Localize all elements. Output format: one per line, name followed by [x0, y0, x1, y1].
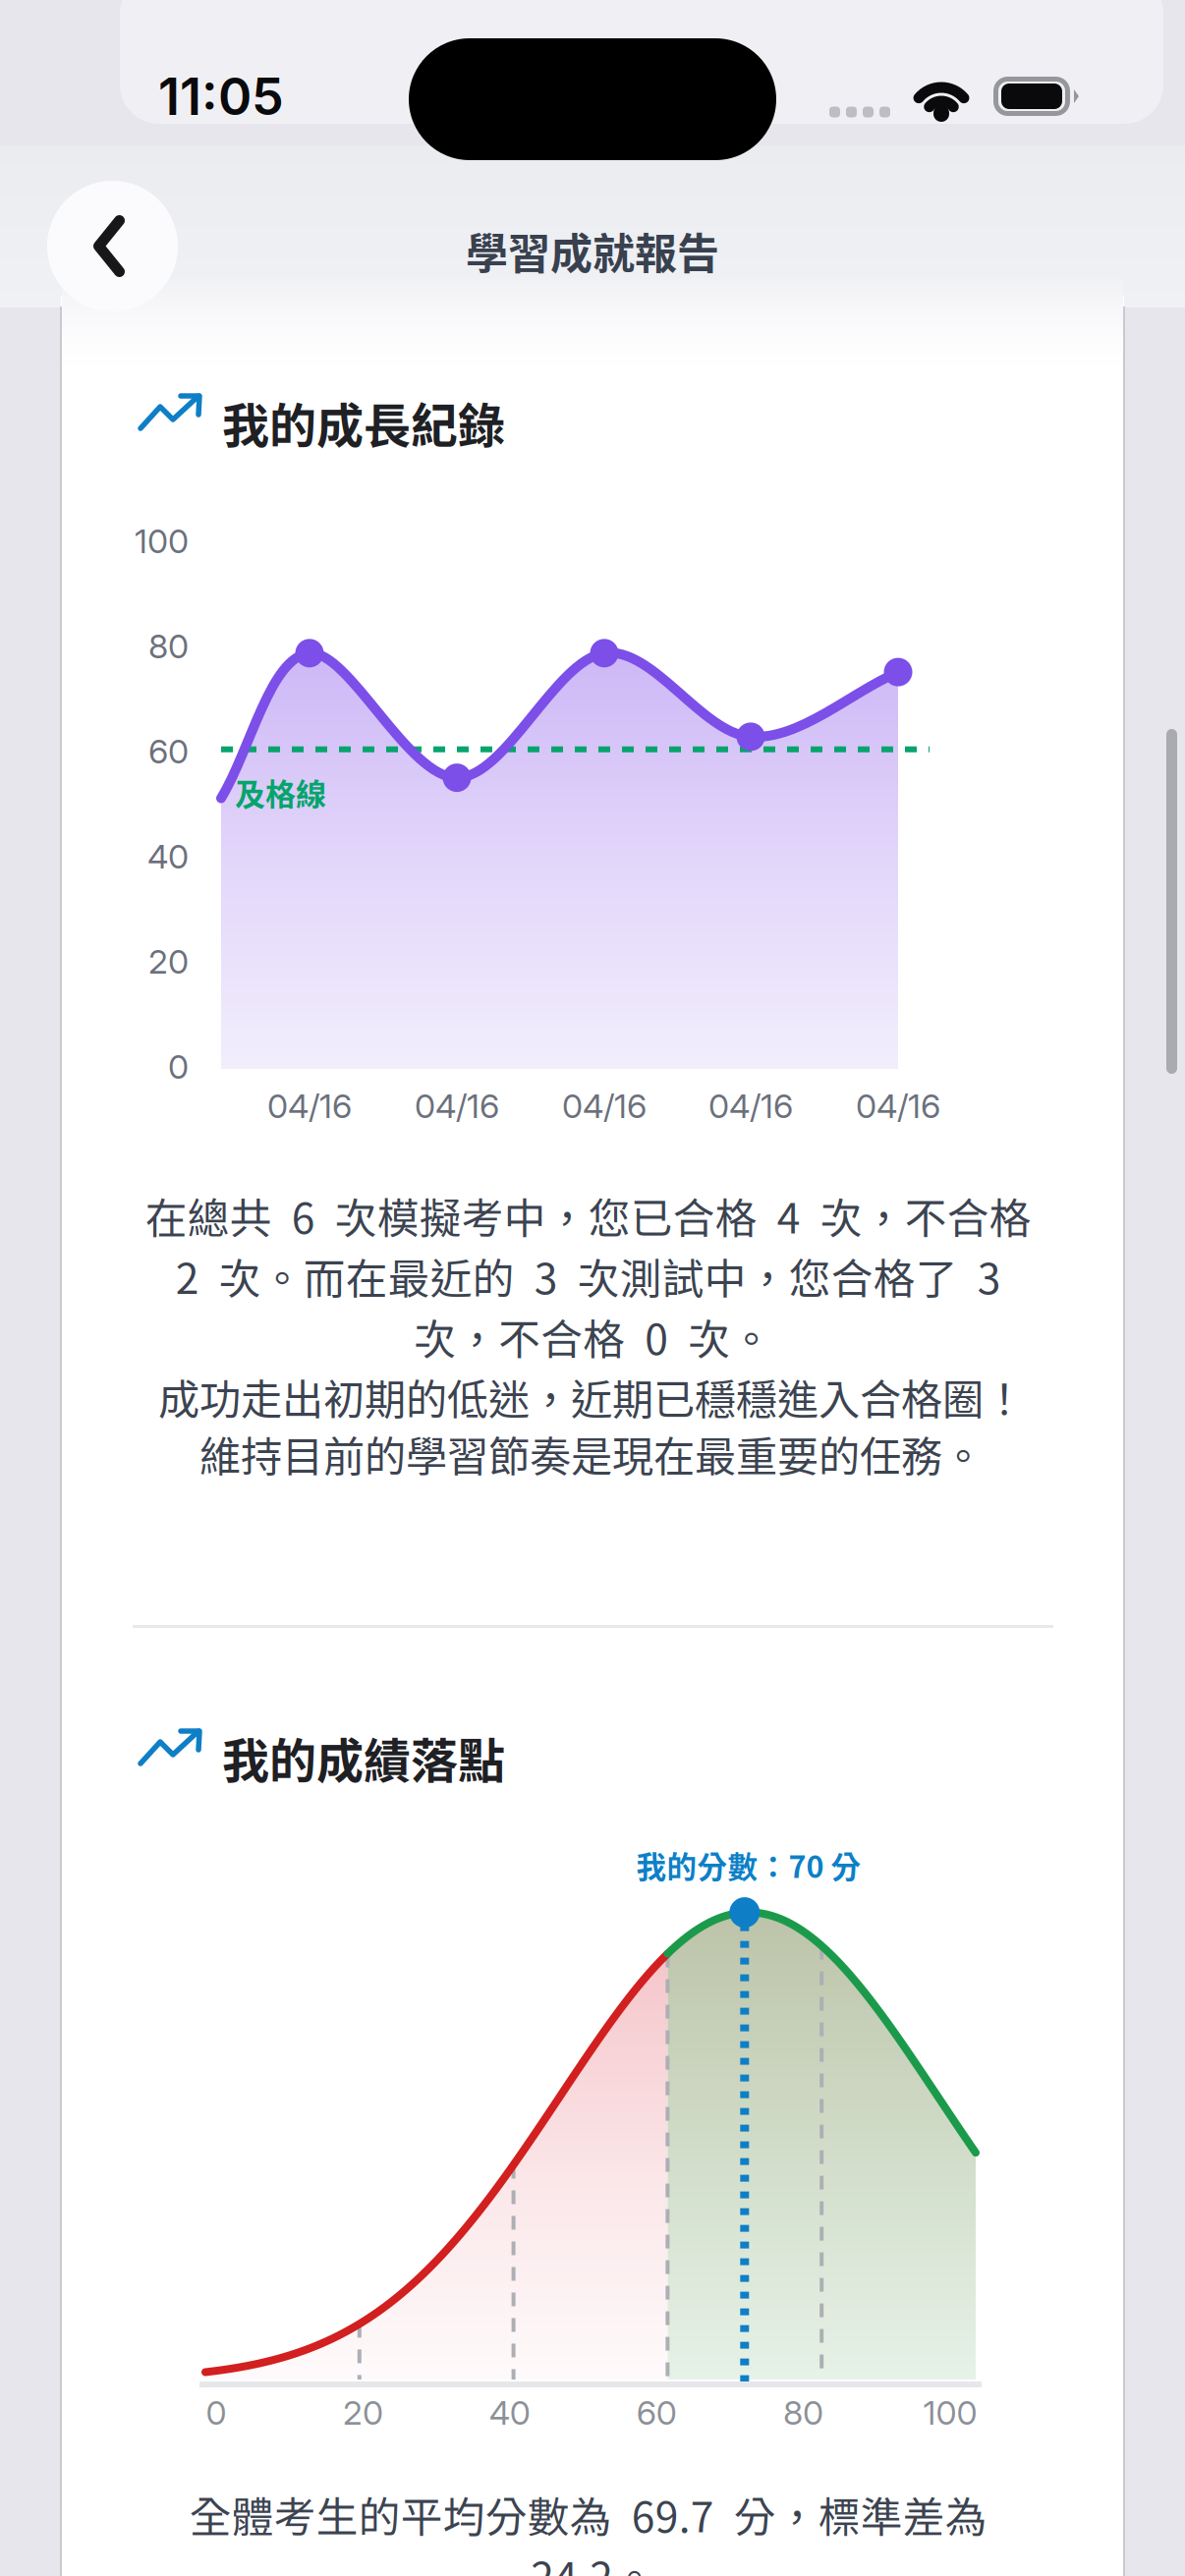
staticText: 40	[489, 2392, 530, 2433]
staticText: 11:05	[158, 65, 284, 127]
staticText: 0	[206, 2392, 226, 2433]
staticText: 04/16	[267, 1086, 352, 1126]
staticText: 我的成長紀錄	[222, 388, 505, 456]
staticText: 20	[343, 2392, 383, 2433]
staticText: 100	[135, 521, 189, 561]
staticText: 40	[147, 836, 189, 876]
staticText: 04/16	[415, 1086, 499, 1126]
staticText: 20	[148, 941, 189, 982]
staticText: 100	[923, 2392, 977, 2433]
staticText: 60	[636, 2392, 677, 2433]
staticText: 60	[148, 731, 189, 771]
staticText: 04/16	[708, 1086, 793, 1126]
staticText: 0	[168, 1046, 189, 1087]
staticText: 在總共 6 次模擬考中，您已合格 4 次，不合格 2 次。而在最近的 3 次測試…	[145, 1185, 1041, 1367]
staticText: 我的分數：70 分	[636, 1843, 861, 1887]
staticText: 成功走出初期的低迷，近期已穩穩進入合格圈！	[158, 1367, 1025, 1427]
staticText: 04/16	[562, 1086, 647, 1126]
staticText: 80	[148, 626, 189, 666]
staticText: 學習成就報告	[466, 220, 719, 281]
staticText: 及格線	[235, 770, 326, 814]
staticText: 全體考生的平均分數為 69.7 分，標準差為 24.2。	[189, 2484, 997, 2576]
staticText: 維持目前的學習節奏是現在最重要的任務。	[199, 1424, 984, 1484]
staticText: 04/16	[856, 1086, 940, 1126]
staticText: 80	[783, 2392, 824, 2433]
button[interactable]: Back	[47, 181, 178, 311]
staticText: 我的成績落點	[222, 1723, 505, 1792]
